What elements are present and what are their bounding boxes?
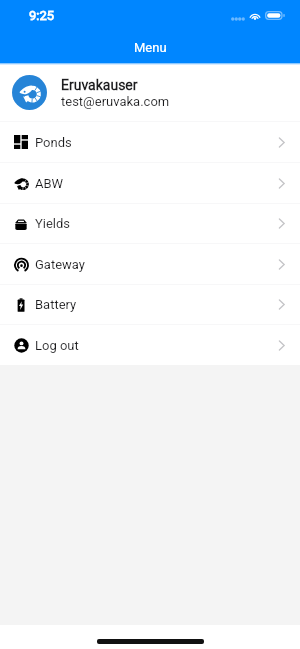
other: Open <box>276 340 287 351</box>
other: Battery <box>265 11 285 20</box>
staticText: Gateway <box>35 257 85 272</box>
other: Open <box>276 259 287 270</box>
staticText: Menu <box>134 40 167 55</box>
other: Open <box>276 218 287 229</box>
other: Open <box>276 299 287 310</box>
button[interactable]: Battery <box>0 285 300 324</box>
other: Open <box>276 178 287 189</box>
button[interactable]: Eruvakauser <box>0 63 300 121</box>
staticText: 9:25 <box>29 8 55 23</box>
button[interactable]: Gateway <box>0 244 300 284</box>
staticText: test@eruvaka.com <box>61 94 170 109</box>
button[interactable]: Yields <box>0 204 300 243</box>
button[interactable]: Log out <box>0 325 300 365</box>
staticText: Battery <box>35 297 77 312</box>
staticText: Ponds <box>35 135 72 150</box>
staticText: ABW <box>35 176 64 191</box>
button[interactable]: ABW <box>0 163 300 203</box>
staticText: Eruvakauser <box>61 77 138 93</box>
button[interactable]: Ponds <box>0 122 300 162</box>
staticText: Yields <box>35 216 71 231</box>
other: Wi-Fi <box>249 11 261 20</box>
other: Cellular signal <box>231 17 245 21</box>
other: Open <box>276 137 287 148</box>
staticText: Log out <box>35 338 79 353</box>
